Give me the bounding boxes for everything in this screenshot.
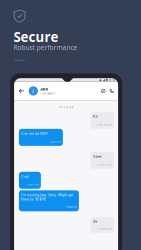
staticText: 09:59 PM: [97, 227, 108, 230]
button[interactable]: Call: [108, 87, 115, 94]
staticText: there by 10:10/15: [21, 197, 46, 201]
staticText: Done: [93, 154, 102, 159]
staticText: 09:30 PM: [96, 123, 108, 126]
staticText: Jack: [40, 87, 48, 91]
staticText: 09:58 PM: [66, 206, 77, 209]
staticText: 4.5: [93, 114, 98, 119]
staticText: Can we do 930?: [21, 131, 48, 136]
staticText: Cool: [21, 174, 29, 179]
button[interactable]: Block contact: [100, 87, 107, 94]
staticText: 09:34 PM: [27, 183, 39, 186]
staticText: Ok: [93, 219, 98, 224]
staticText: Robust performance: [13, 43, 77, 52]
staticText: Secure: [13, 28, 58, 46]
staticText: +19142888142: [40, 92, 55, 95]
staticText: Oct 6, Friday: [59, 106, 74, 109]
staticText: 09:32 PM: [97, 163, 108, 166]
staticText: 09:31 PM: [50, 140, 61, 143]
button[interactable]: Back: [19, 86, 24, 96]
staticText: J: [32, 88, 35, 94]
staticText: 10:15: [108, 78, 115, 81]
staticText: I'm running late. Sorry. Might get: [21, 193, 73, 197]
